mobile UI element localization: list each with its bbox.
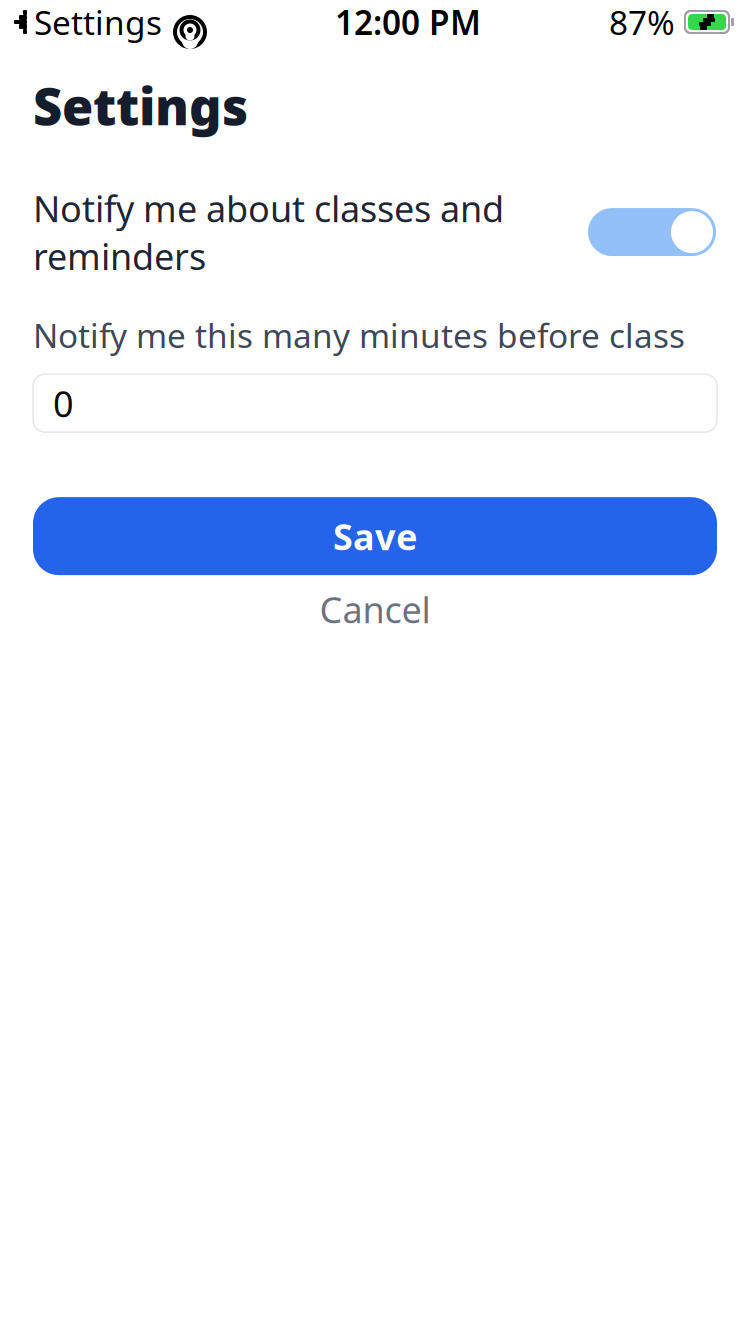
button[interactable]: Save	[33, 497, 717, 575]
staticText: Settings	[34, 0, 162, 44]
staticText: Cancel	[319, 585, 430, 633]
staticText: Notify me about classes and reminders	[33, 184, 504, 280]
staticText: Save	[333, 512, 417, 560]
staticText: Notify me this many minutes before class	[33, 313, 685, 357]
button[interactable]: Back to Settings	[14, 0, 162, 44]
staticText: 87%	[609, 0, 675, 44]
button[interactable]: Notify me about classes and reminders	[588, 208, 716, 256]
staticText: 12:00 PM	[335, 0, 481, 44]
staticText: Settings	[33, 72, 248, 139]
staticText: 0	[53, 379, 74, 427]
button[interactable]: Cancel	[33, 583, 717, 635]
